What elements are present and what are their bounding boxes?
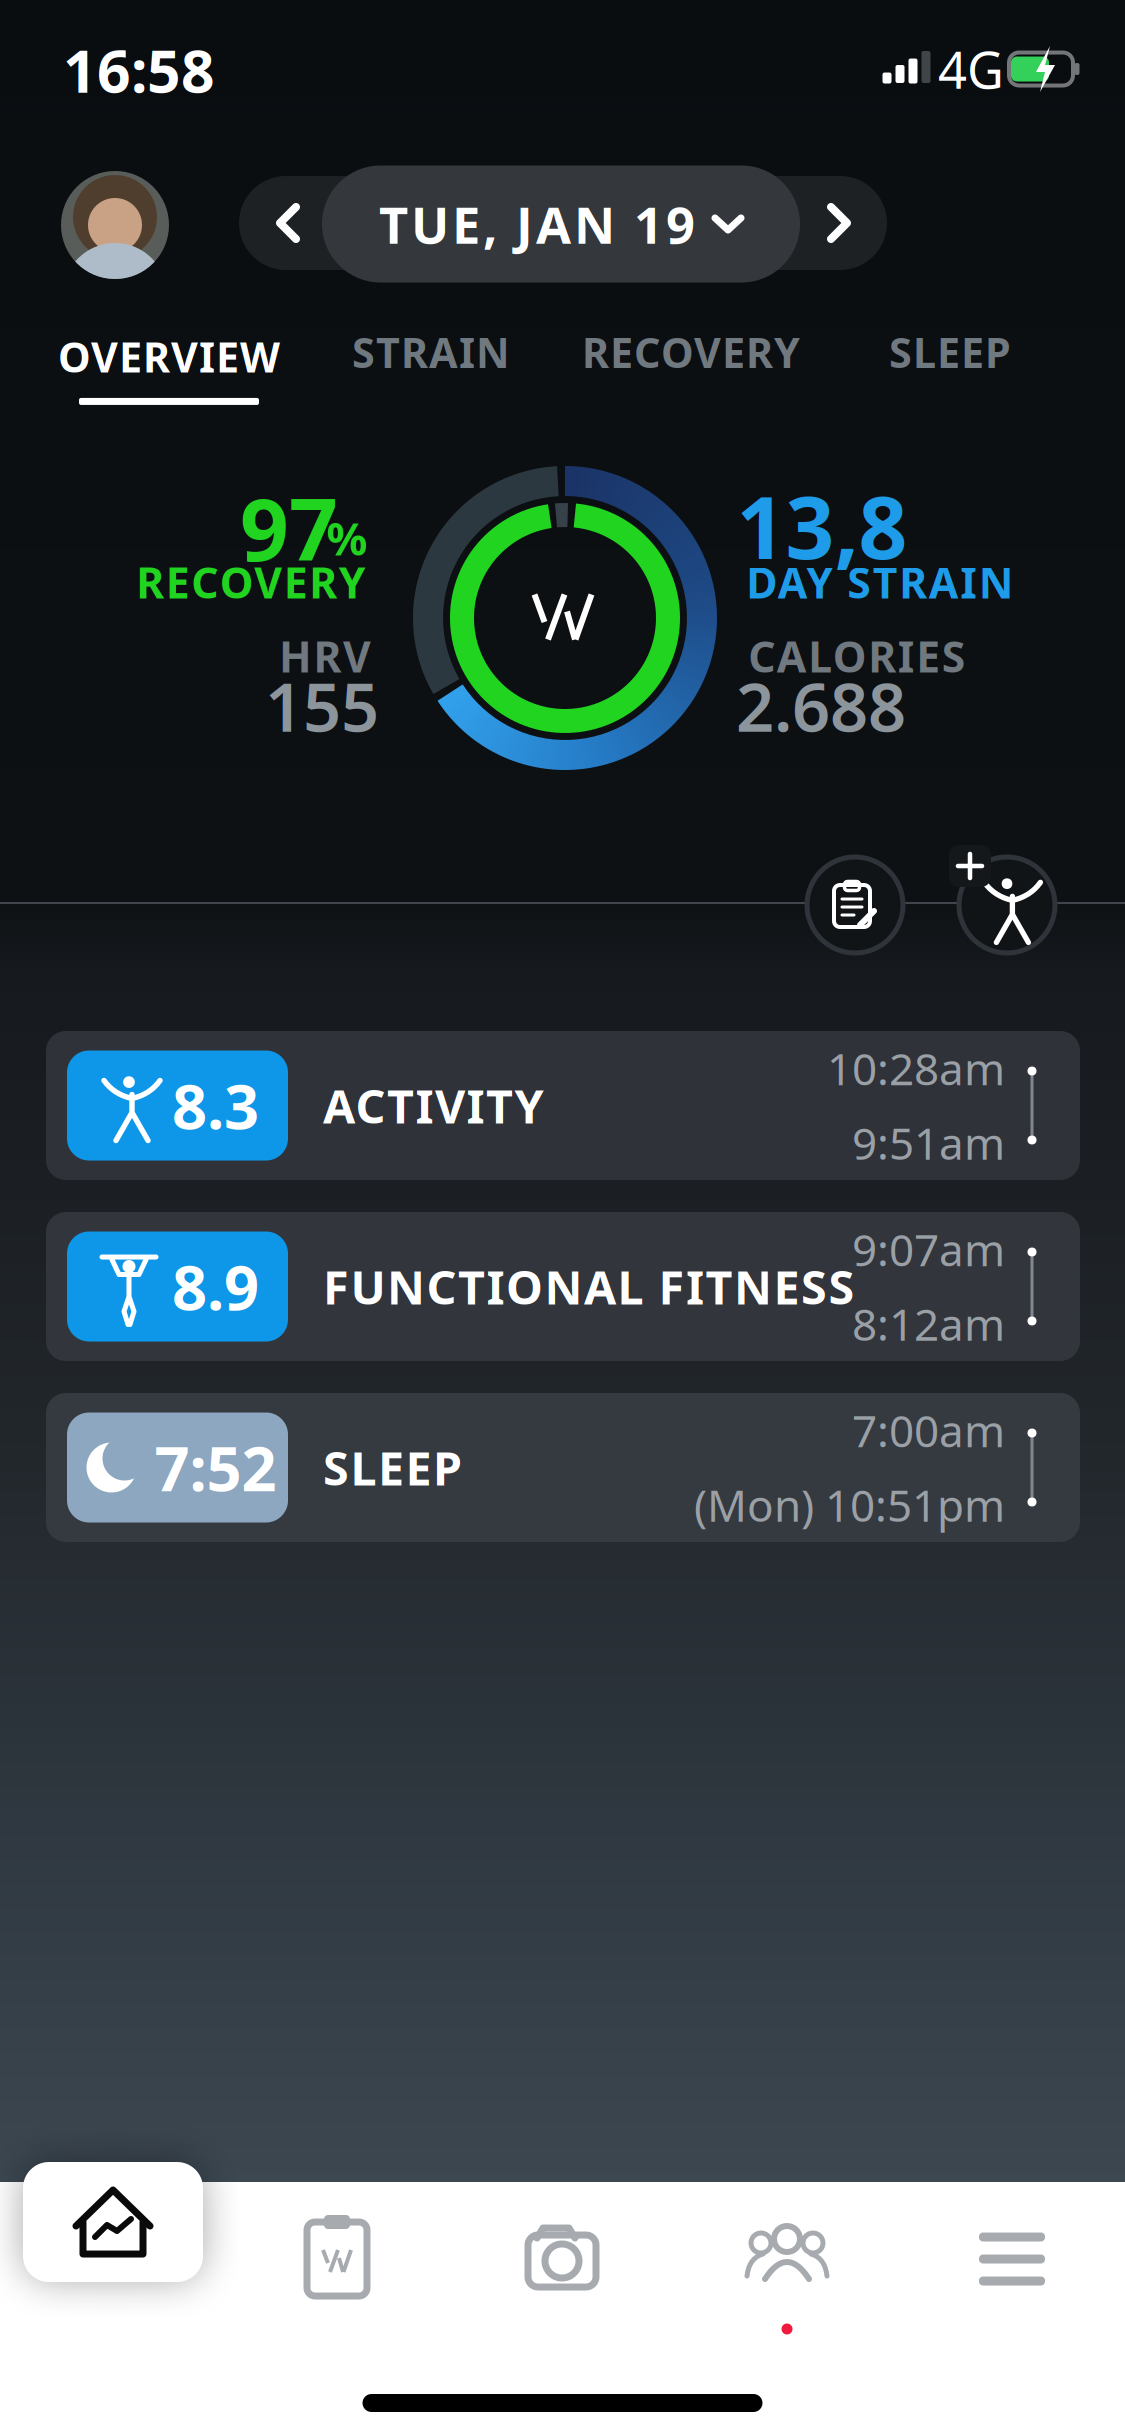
staticText: 4G bbox=[938, 35, 1004, 103]
staticText: FUNCTIONAL FITNESS bbox=[323, 1255, 854, 1317]
button[interactable]: Journal bbox=[805, 855, 905, 955]
button[interactable]: 8.9 bbox=[46, 1212, 1080, 1361]
button[interactable]: Profile bbox=[61, 171, 169, 279]
button[interactable]: Add activity bbox=[957, 855, 1057, 955]
staticText: % bbox=[326, 508, 367, 568]
staticText: 7:00am bbox=[852, 1401, 1005, 1459]
staticText: SLEEP bbox=[323, 1436, 462, 1498]
staticText: RECOVERY bbox=[136, 554, 366, 610]
staticText: 155 bbox=[265, 662, 379, 750]
button[interactable]: Next day bbox=[801, 179, 877, 267]
button[interactable]: SLEEP bbox=[889, 325, 1011, 379]
button[interactable]: 7:52 bbox=[46, 1393, 1080, 1542]
staticText: 9:51am bbox=[852, 1113, 1005, 1172]
staticText: HRV bbox=[279, 628, 371, 684]
button[interactable]: Camera bbox=[502, 2199, 622, 2319]
button[interactable]: Community bbox=[727, 2192, 847, 2312]
staticText: RECOVERY bbox=[582, 325, 800, 379]
staticText: 8.3 bbox=[172, 1065, 259, 1146]
staticText: 9:07am bbox=[852, 1220, 1005, 1278]
staticText: DAY STRAIN bbox=[746, 554, 1014, 610]
staticText: 10:28am bbox=[827, 1039, 1005, 1097]
staticText: CALORIES bbox=[748, 628, 966, 684]
button[interactable]: Home bbox=[23, 2162, 203, 2282]
button[interactable]: OVERVIEW bbox=[58, 329, 280, 405]
staticText: 97 bbox=[240, 471, 338, 585]
button[interactable]: TUE, JAN 19 bbox=[322, 165, 800, 282]
staticText: (Mon) 10:51pm bbox=[694, 1475, 1005, 1534]
button[interactable]: RECOVERY bbox=[582, 325, 800, 379]
staticText: 7:52 bbox=[154, 1427, 276, 1508]
staticText: 8:12am bbox=[852, 1294, 1005, 1353]
staticText: SLEEP bbox=[889, 325, 1011, 379]
button[interactable]: Previous day bbox=[250, 179, 326, 267]
button[interactable]: 8.3 bbox=[46, 1031, 1080, 1180]
staticText: TUE, JAN 19 bbox=[379, 190, 695, 258]
staticText: 16:58 bbox=[63, 31, 215, 109]
staticText: 13,8 bbox=[736, 469, 907, 583]
staticText: OVERVIEW bbox=[58, 329, 280, 384]
staticText: 8.9 bbox=[172, 1246, 259, 1327]
staticText: STRAIN bbox=[352, 325, 510, 379]
staticText: 2.688 bbox=[736, 662, 906, 750]
button[interactable]: Journal entries bbox=[277, 2199, 397, 2319]
button[interactable]: More bbox=[952, 2199, 1072, 2319]
staticText: ACTIVITY bbox=[323, 1074, 543, 1136]
button[interactable]: STRAIN bbox=[352, 325, 510, 379]
